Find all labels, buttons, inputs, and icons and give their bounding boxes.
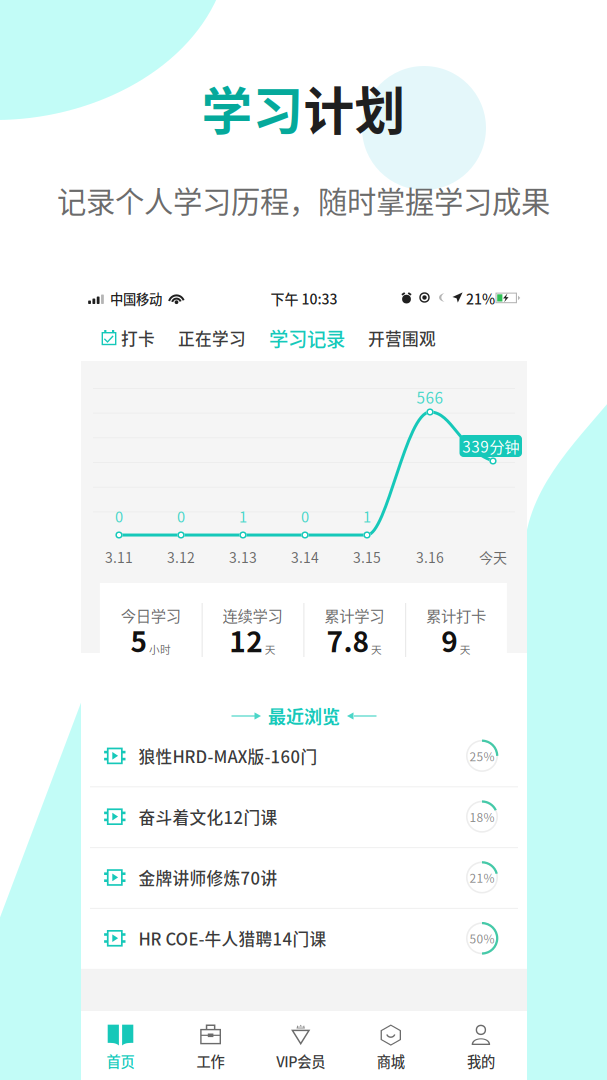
staticText: 25% [469, 747, 494, 765]
button[interactable]: 金牌讲师修炼70讲 [81, 847, 527, 908]
staticText: 天 [265, 641, 276, 657]
button[interactable]: HR COE-牛人猎聘14门课 [81, 908, 527, 969]
staticText: 21% [466, 288, 495, 309]
staticText: 0 [177, 505, 185, 527]
button[interactable]: 学习记录 [269, 324, 345, 352]
staticText: 0 [115, 505, 123, 527]
staticText: 工作 [197, 1051, 225, 1071]
button[interactable]: 首页 [81, 1011, 527, 1080]
button[interactable]: 打卡 [101, 326, 155, 350]
staticText: 最近浏览 [268, 703, 340, 729]
staticText: 339分钟 [462, 435, 519, 457]
staticText: VIP会员 [276, 1051, 325, 1071]
staticText: 天 [371, 641, 382, 657]
staticText: 7.8 [326, 620, 369, 660]
staticText: 9 [441, 620, 458, 660]
staticText: 狼性HRD-MAX版-160门 [138, 744, 317, 768]
button[interactable]: 工作 [81, 1011, 527, 1080]
button[interactable]: 狼性HRD-MAX版-160门 [81, 725, 527, 786]
staticText: 记录个人学习历程，随时掌握学习成果 [57, 179, 550, 221]
staticText: 50% [469, 930, 494, 947]
staticText: 首页 [106, 1051, 134, 1071]
button[interactable]: VIP会员 [81, 1011, 527, 1080]
button[interactable]: 奋斗着文化12门课 [81, 786, 527, 847]
staticText: 12 [229, 620, 263, 660]
staticText: 566 [416, 386, 443, 408]
staticText: 累计打卡 [426, 604, 486, 626]
staticText: 1 [363, 505, 371, 527]
staticText: 学习记录 [269, 324, 345, 352]
staticText: 3.14 [291, 547, 319, 567]
staticText: 3.16 [416, 547, 444, 567]
staticText: 3.12 [167, 547, 195, 567]
staticText: 今天 [479, 547, 507, 567]
staticText: 3.13 [229, 547, 257, 567]
staticText: 下午 10:33 [270, 288, 337, 309]
staticText: 21% [469, 869, 494, 886]
staticText: 累计学习 [324, 604, 384, 626]
staticText: 我的 [467, 1051, 495, 1071]
staticText: 开营围观 [368, 326, 436, 350]
staticText: 5 [130, 620, 147, 660]
button[interactable]: 开营围观 [368, 326, 436, 350]
button[interactable]: 商城 [81, 1011, 527, 1080]
staticText: 天 [460, 641, 471, 657]
button[interactable]: 正在学习 [178, 326, 246, 350]
staticText: 奋斗着文化12门课 [138, 805, 277, 829]
staticText: 0 [301, 505, 309, 527]
staticText: 正在学习 [178, 326, 246, 350]
staticText: 连续学习 [222, 604, 282, 626]
staticText: 计划 [303, 71, 405, 145]
staticText: 打卡 [121, 326, 155, 350]
staticText: 中国移动 [110, 289, 162, 308]
staticText: 商城 [377, 1051, 405, 1071]
staticText: 小时 [149, 641, 171, 657]
staticText: 今日学习 [121, 604, 181, 626]
staticText: 3.15 [353, 547, 381, 567]
staticText: 3.11 [105, 547, 133, 567]
staticText: 学习 [201, 71, 303, 145]
staticText: HR COE-牛人猎聘14门课 [138, 926, 326, 950]
staticText: 18% [469, 808, 494, 825]
staticText: 金牌讲师修炼70讲 [138, 865, 277, 889]
staticText: 1 [239, 505, 247, 527]
button[interactable]: 我的 [81, 1011, 527, 1080]
